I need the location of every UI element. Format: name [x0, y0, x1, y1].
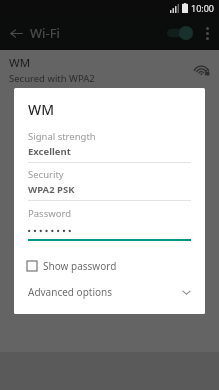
staticText: Show password [43, 259, 117, 273]
staticText: Signal strength [28, 130, 96, 143]
button[interactable]: Show password [27, 259, 117, 273]
staticText: Excellent [28, 145, 71, 158]
staticText: Secured with WPA2 [9, 72, 95, 85]
button[interactable]: Password field [28, 226, 191, 241]
staticText: Advanced options [28, 285, 113, 299]
staticText: Security [28, 168, 64, 181]
staticText: Wi-Fi [30, 24, 60, 42]
button[interactable]: Back [3, 20, 29, 46]
staticText: WM [9, 55, 31, 71]
button[interactable]: More options [196, 22, 218, 44]
button[interactable]: Wi-Fi on off toggle [165, 23, 195, 43]
button[interactable]: WM [0, 50, 219, 90]
staticText: Password [28, 207, 71, 220]
staticText: WPA2 PSK [28, 183, 75, 196]
staticText: WM [28, 100, 55, 119]
button[interactable]: Advanced options [28, 285, 191, 299]
staticText: 10:00 [191, 2, 215, 14]
